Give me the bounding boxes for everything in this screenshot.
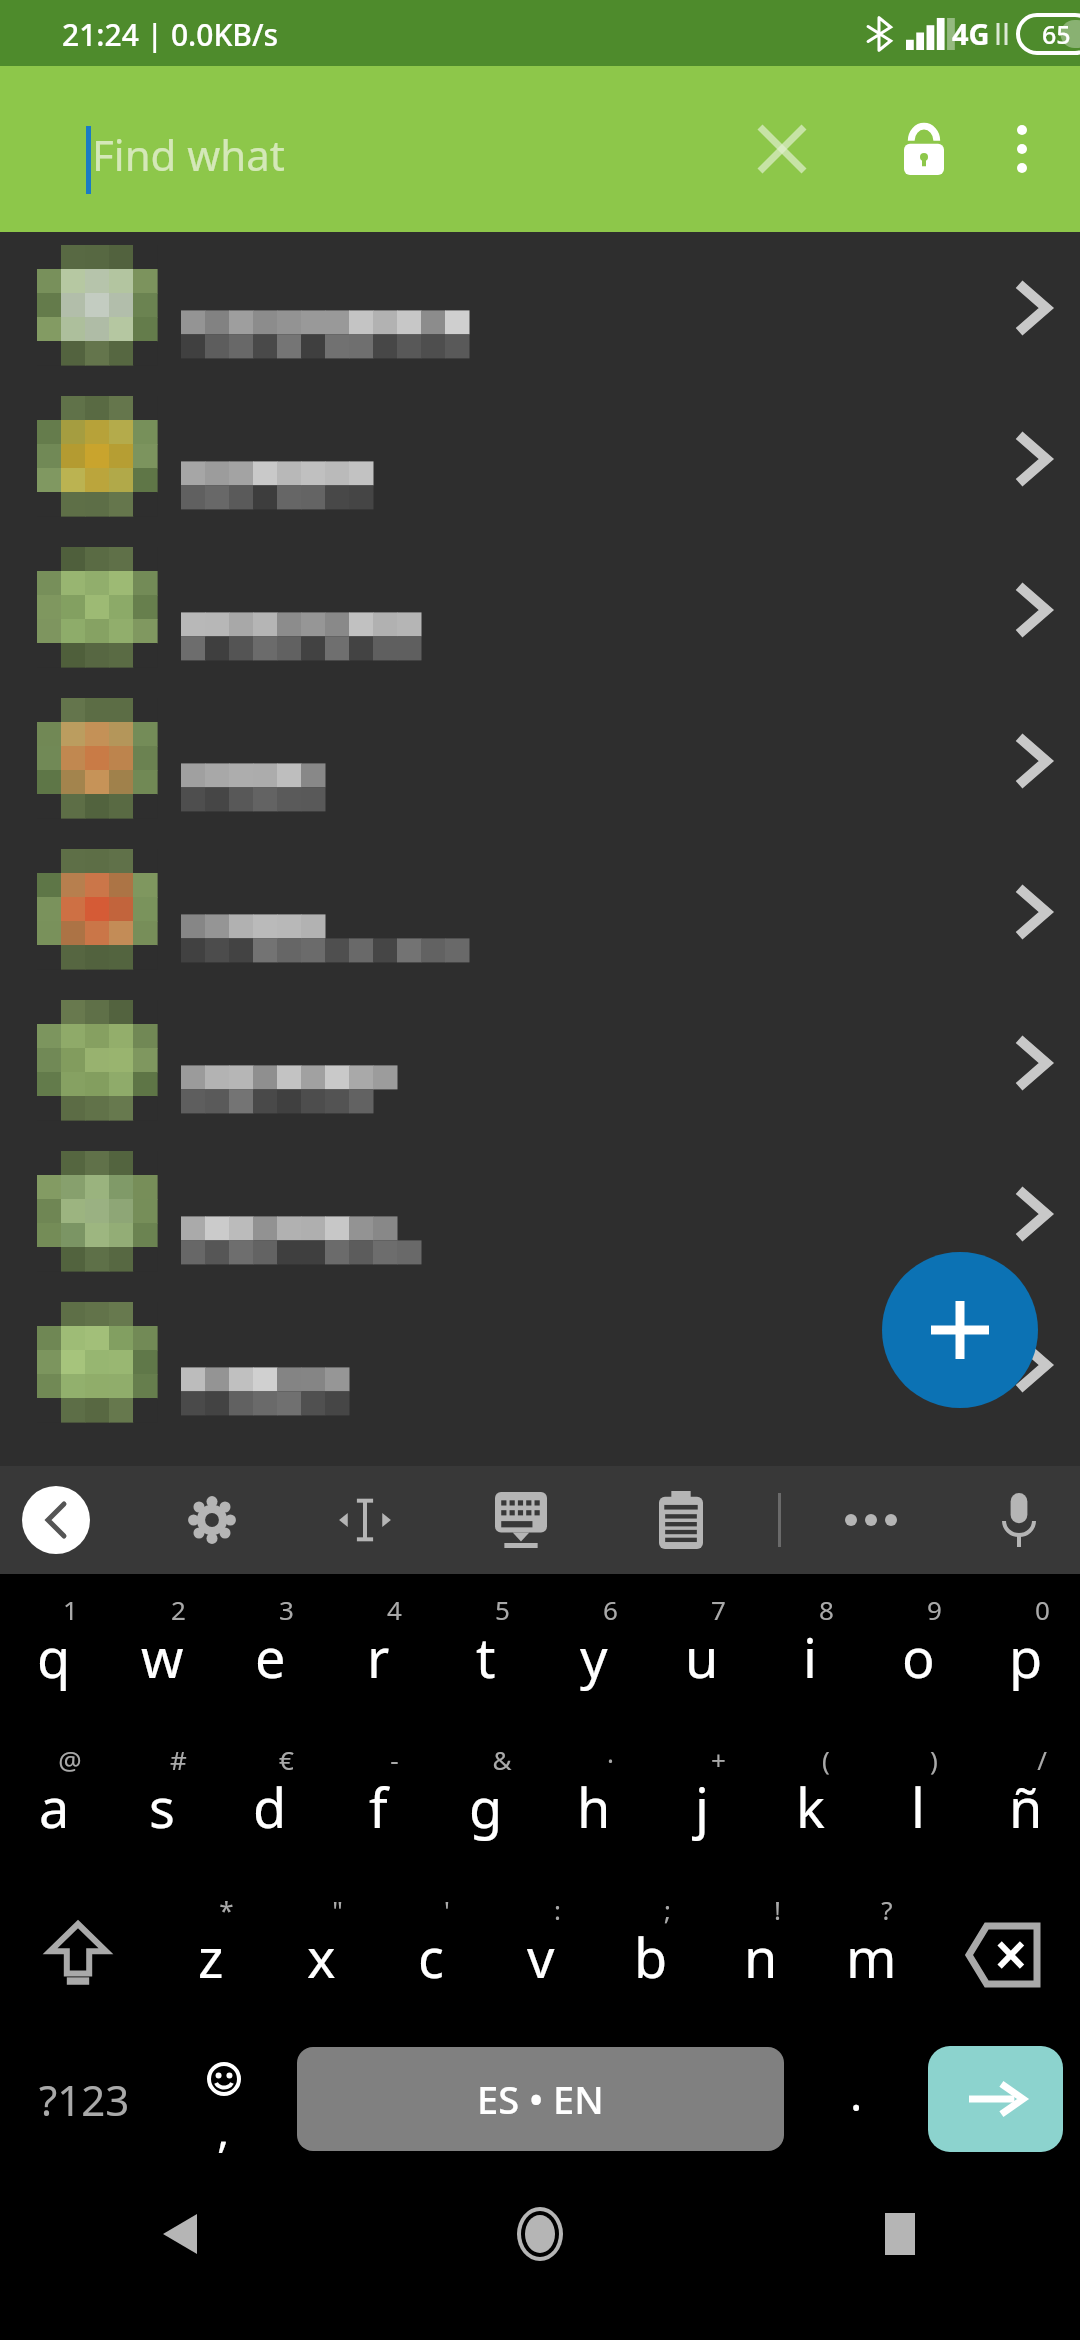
staticText: 0 — [1035, 1592, 1050, 1627]
button[interactable]: & — [432, 1724, 540, 1874]
staticText: : — [554, 1892, 561, 1927]
button[interactable]: @ — [0, 1724, 108, 1874]
button[interactable]: # — [108, 1724, 216, 1874]
button[interactable]: More — [826, 1475, 916, 1565]
staticText: + — [711, 1742, 726, 1777]
staticText: x — [307, 1920, 336, 1994]
staticText: · — [607, 1742, 614, 1777]
button[interactable]: Emoji and comma — [169, 2024, 278, 2174]
staticText: i — [803, 1620, 817, 1694]
button[interactable]: · — [540, 1724, 648, 1874]
button[interactable] — [0, 987, 1080, 1138]
button[interactable]: Enter — [928, 2046, 1063, 2152]
button[interactable]: " — [266, 1874, 376, 2024]
button[interactable]: ?123 — [0, 2024, 169, 2174]
button[interactable]: Switch keyboard — [478, 1477, 564, 1563]
staticText: € — [279, 1742, 294, 1777]
button[interactable]: ? — [816, 1874, 926, 2024]
button[interactable]: 3 — [216, 1574, 324, 1724]
button[interactable]: 2 — [108, 1574, 216, 1724]
button[interactable] — [0, 836, 1080, 987]
button[interactable]: ES • EN — [297, 2047, 784, 2151]
button[interactable]: ' — [376, 1874, 486, 2024]
staticText: ' — [444, 1892, 450, 1927]
button[interactable]: . — [802, 2024, 911, 2174]
button[interactable]: Back — [0, 2174, 360, 2294]
button[interactable] — [0, 232, 1080, 383]
button[interactable]: 8 — [756, 1574, 864, 1724]
button[interactable]: Backspace — [926, 1874, 1080, 2024]
staticText: ; — [664, 1892, 671, 1927]
staticText: j — [695, 1770, 709, 1844]
button[interactable] — [0, 1289, 1080, 1440]
button[interactable]: 6 — [540, 1574, 648, 1724]
button[interactable]: : — [486, 1874, 596, 2024]
button[interactable]: Add — [882, 1252, 1038, 1408]
staticText: f — [369, 1770, 388, 1844]
staticText: b — [634, 1920, 668, 1994]
staticText: a — [39, 1770, 70, 1844]
staticText: 4G — [952, 14, 990, 53]
staticText: ? — [881, 1892, 893, 1927]
staticText: @ — [58, 1742, 82, 1777]
staticText: 21:24 | 0.0KB/s — [62, 14, 279, 55]
button[interactable]: Clear — [734, 101, 830, 197]
button[interactable]: + — [648, 1724, 756, 1874]
button[interactable] — [0, 685, 1080, 836]
button[interactable]: Home — [360, 2174, 720, 2294]
button[interactable]: 7 — [648, 1574, 756, 1724]
staticText: t — [476, 1620, 496, 1694]
staticText: 9 — [927, 1592, 942, 1627]
button[interactable] — [0, 1138, 1080, 1289]
button[interactable]: * — [155, 1874, 266, 2024]
staticText: 6 — [603, 1592, 618, 1627]
button[interactable]: ! — [706, 1874, 816, 2024]
staticText: o — [902, 1620, 935, 1694]
staticText: s — [149, 1770, 175, 1844]
staticText: ) — [930, 1742, 938, 1777]
button[interactable]: Voice input — [974, 1475, 1064, 1565]
button[interactable]: Back — [22, 1486, 90, 1554]
button[interactable]: 9 — [864, 1574, 972, 1724]
button[interactable]: ( — [756, 1724, 864, 1874]
button[interactable]: ; — [596, 1874, 706, 2024]
button[interactable]: / — [972, 1724, 1080, 1874]
staticText: . — [850, 2062, 863, 2125]
staticText: e — [255, 1620, 286, 1694]
button[interactable]: Shift — [0, 1874, 155, 2024]
staticText: 1 — [63, 1592, 78, 1627]
staticText: " — [332, 1892, 343, 1927]
staticText: q — [37, 1620, 71, 1694]
button[interactable]: 1 — [0, 1574, 108, 1724]
staticText: p — [1009, 1620, 1043, 1694]
button[interactable]: Move cursor — [325, 1480, 405, 1560]
button[interactable]: € — [216, 1724, 324, 1874]
staticText: u — [685, 1620, 719, 1694]
staticText: h — [577, 1770, 611, 1844]
staticText: r — [367, 1620, 390, 1694]
button[interactable]: ) — [864, 1724, 972, 1874]
staticText: c — [418, 1920, 444, 1994]
button[interactable]: 5 — [432, 1574, 540, 1724]
staticText: 2 — [171, 1592, 186, 1627]
button[interactable]: - — [324, 1724, 432, 1874]
button[interactable] — [0, 534, 1080, 685]
staticText: v — [527, 1920, 555, 1994]
staticText: 7 — [711, 1592, 726, 1627]
staticText: d — [253, 1770, 287, 1844]
button[interactable]: Settings — [172, 1480, 252, 1560]
staticText: 8 — [819, 1592, 834, 1627]
staticText: n — [744, 1920, 778, 1994]
button[interactable]: Recent apps — [720, 2174, 1080, 2294]
staticText: & — [492, 1742, 512, 1777]
button[interactable]: More options — [982, 109, 1062, 189]
button[interactable]: 4 — [324, 1574, 432, 1724]
staticText: l — [911, 1770, 925, 1844]
button[interactable]: Lock — [876, 101, 972, 197]
button[interactable]: 0 — [972, 1574, 1080, 1724]
staticText: z — [198, 1920, 224, 1994]
button[interactable]: Clipboard — [638, 1477, 724, 1563]
button[interactable] — [0, 383, 1080, 534]
staticText: k — [796, 1770, 825, 1844]
staticText: m — [846, 1920, 897, 1994]
